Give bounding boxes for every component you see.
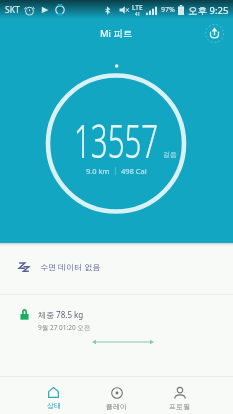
staticText: 프로필 <box>169 402 190 411</box>
staticText: SKT <box>5 4 20 16</box>
button[interactable]: 플레이 <box>85 377 148 414</box>
staticText: 걸음 <box>163 150 177 159</box>
button[interactable]: 체중 78.5 kg <box>0 295 233 376</box>
button[interactable]: Sync <box>204 23 225 44</box>
button[interactable]: 프로필 <box>148 377 211 414</box>
staticText: 오후 9:25 <box>188 4 229 17</box>
staticText: 9.0 km <box>86 166 110 176</box>
staticText: LTE <box>132 3 143 12</box>
staticText: Mi 피트 <box>100 27 133 40</box>
staticText: 41 <box>135 11 141 17</box>
staticText: 13557 <box>74 110 158 171</box>
staticText: 97% <box>161 5 175 15</box>
staticText: 체중 78.5 kg <box>38 309 84 320</box>
staticText: 상태 <box>47 401 61 410</box>
staticText: 수면 데이터 없음 <box>40 261 101 272</box>
staticText: 498 Cal <box>121 166 147 176</box>
staticText: 9월 27 01:20 오전 <box>38 323 91 332</box>
button[interactable]: 수면 데이터 없음 <box>0 246 233 294</box>
button[interactable]: 상태 <box>22 377 85 414</box>
staticText: 플레이 <box>106 402 127 411</box>
